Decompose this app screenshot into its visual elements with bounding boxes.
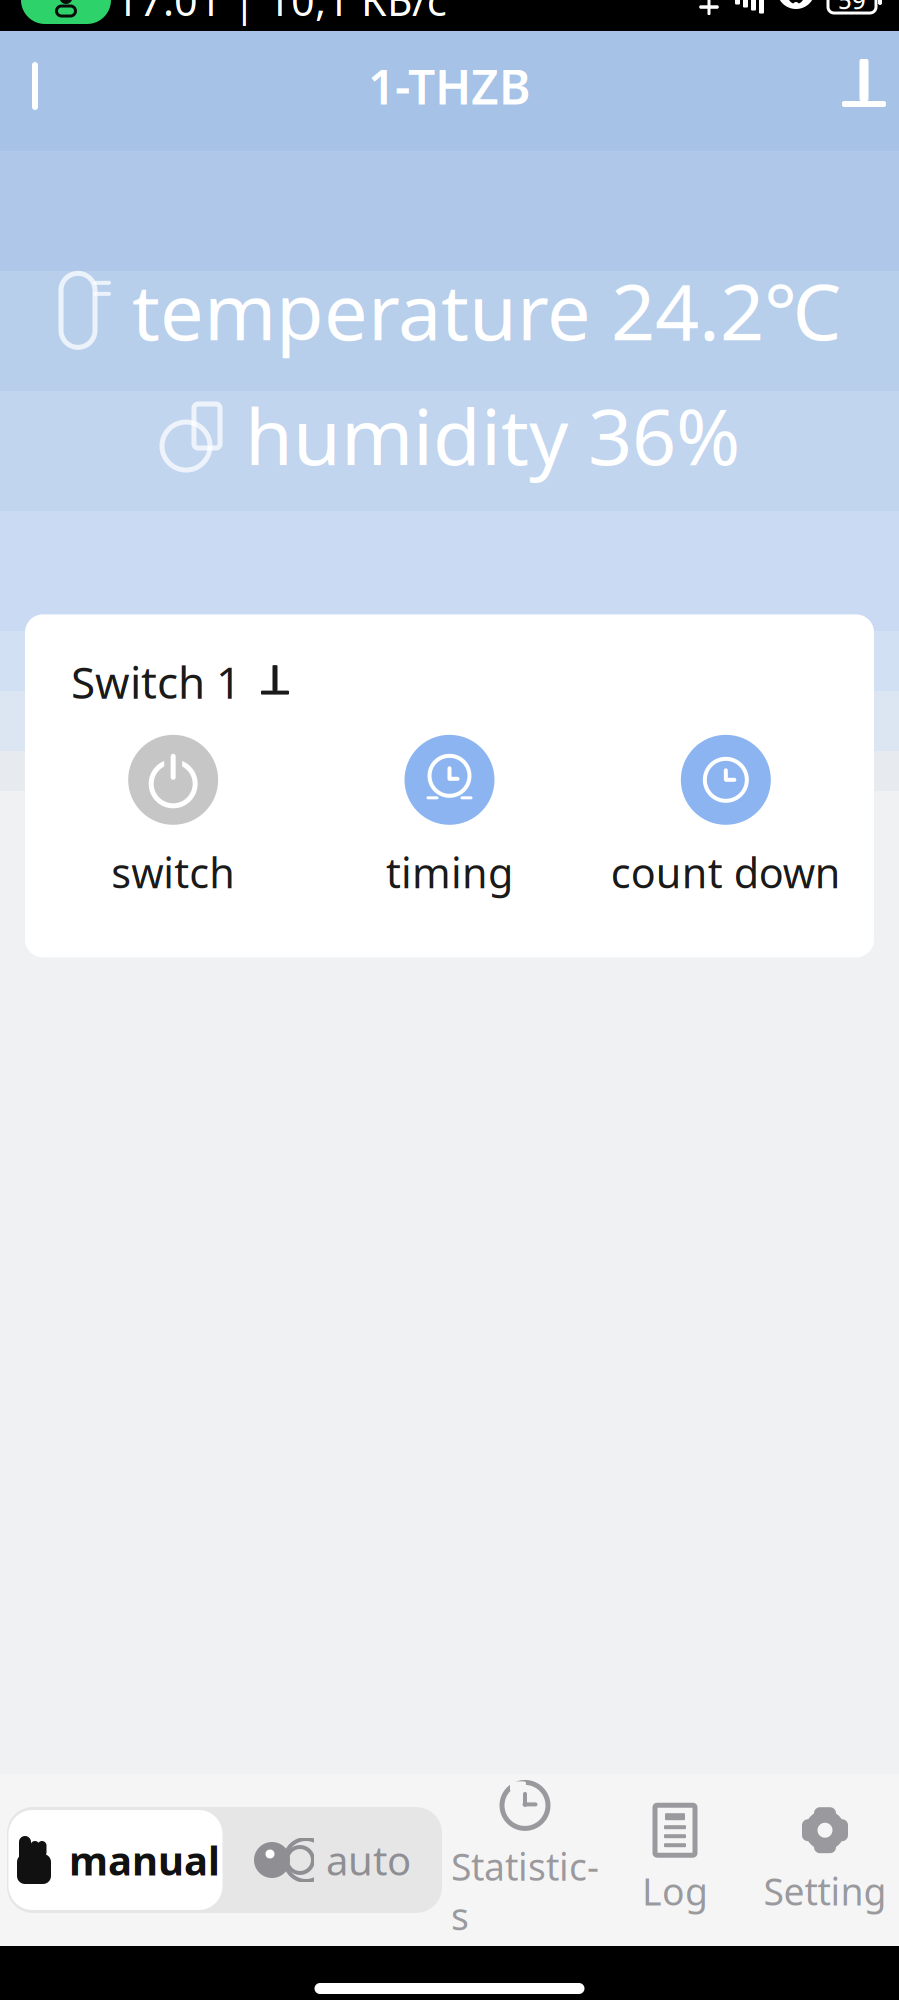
staticText: switch bbox=[111, 845, 235, 900]
staticText: temperature 24.2℃ bbox=[132, 259, 841, 362]
button[interactable]: Statistics bbox=[450, 1790, 600, 1930]
staticText: Statistics bbox=[451, 1841, 599, 1941]
staticText: 17:01 | 10,1 КБ/с bbox=[115, 0, 447, 27]
button[interactable]: Log bbox=[600, 1790, 750, 1930]
button[interactable]: Back bbox=[0, 38, 83, 134]
staticText: Setting bbox=[763, 1866, 886, 1916]
staticText: Log bbox=[642, 1866, 708, 1916]
button[interactable]: timing bbox=[311, 729, 588, 906]
button[interactable]: manual bbox=[8, 1810, 222, 1910]
button[interactable]: count down bbox=[588, 729, 864, 906]
staticText: humidity 36% bbox=[245, 384, 740, 486]
staticText: timing bbox=[386, 845, 513, 900]
staticText: 59 bbox=[838, 0, 866, 16]
staticText: manual bbox=[69, 1833, 220, 1886]
button[interactable]: switch bbox=[35, 729, 311, 906]
staticText: 1-THZB bbox=[368, 54, 531, 118]
staticText: auto bbox=[326, 1833, 411, 1886]
button[interactable]: Setting bbox=[750, 1790, 899, 1930]
staticText: count down bbox=[611, 845, 841, 900]
button[interactable]: Edit name bbox=[816, 38, 899, 134]
staticText: Switch 1 bbox=[71, 652, 241, 711]
button[interactable]: auto bbox=[222, 1810, 440, 1910]
button[interactable]: Rename Switch 1 bbox=[255, 662, 295, 702]
